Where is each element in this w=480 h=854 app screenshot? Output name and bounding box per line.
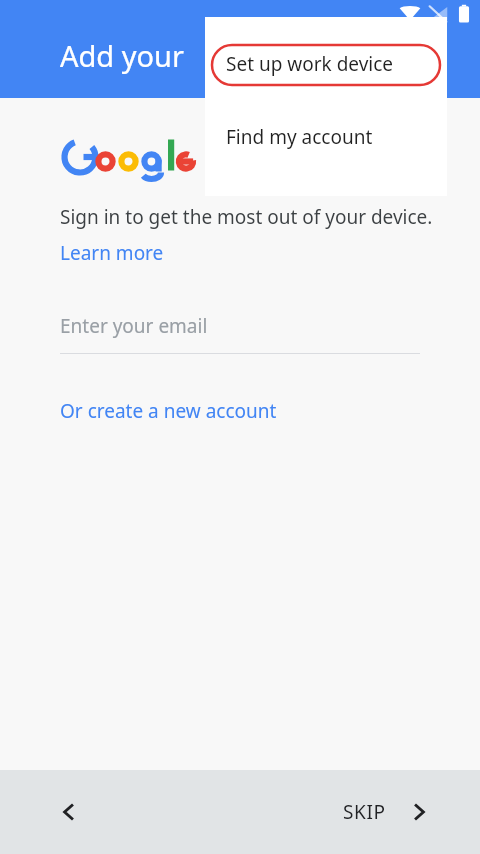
staticText: Enter your email — [60, 313, 208, 339]
button[interactable]: SKIP — [339, 789, 434, 835]
staticText: Add your — [60, 36, 184, 75]
staticText: Or create a new account — [60, 398, 277, 424]
button[interactable]: Or create a new account — [60, 398, 277, 424]
staticText: SKIP — [343, 799, 386, 825]
staticText: Set up work device — [226, 51, 394, 77]
staticText: Sign in to get the most out of your devi… — [60, 204, 440, 266]
button[interactable]: Enter your email — [60, 313, 420, 354]
button[interactable]: Back — [45, 788, 93, 836]
staticText: Find my account — [226, 124, 373, 150]
button[interactable]: Set up work device — [205, 17, 447, 106]
button[interactable]: Find my account — [205, 106, 447, 196]
